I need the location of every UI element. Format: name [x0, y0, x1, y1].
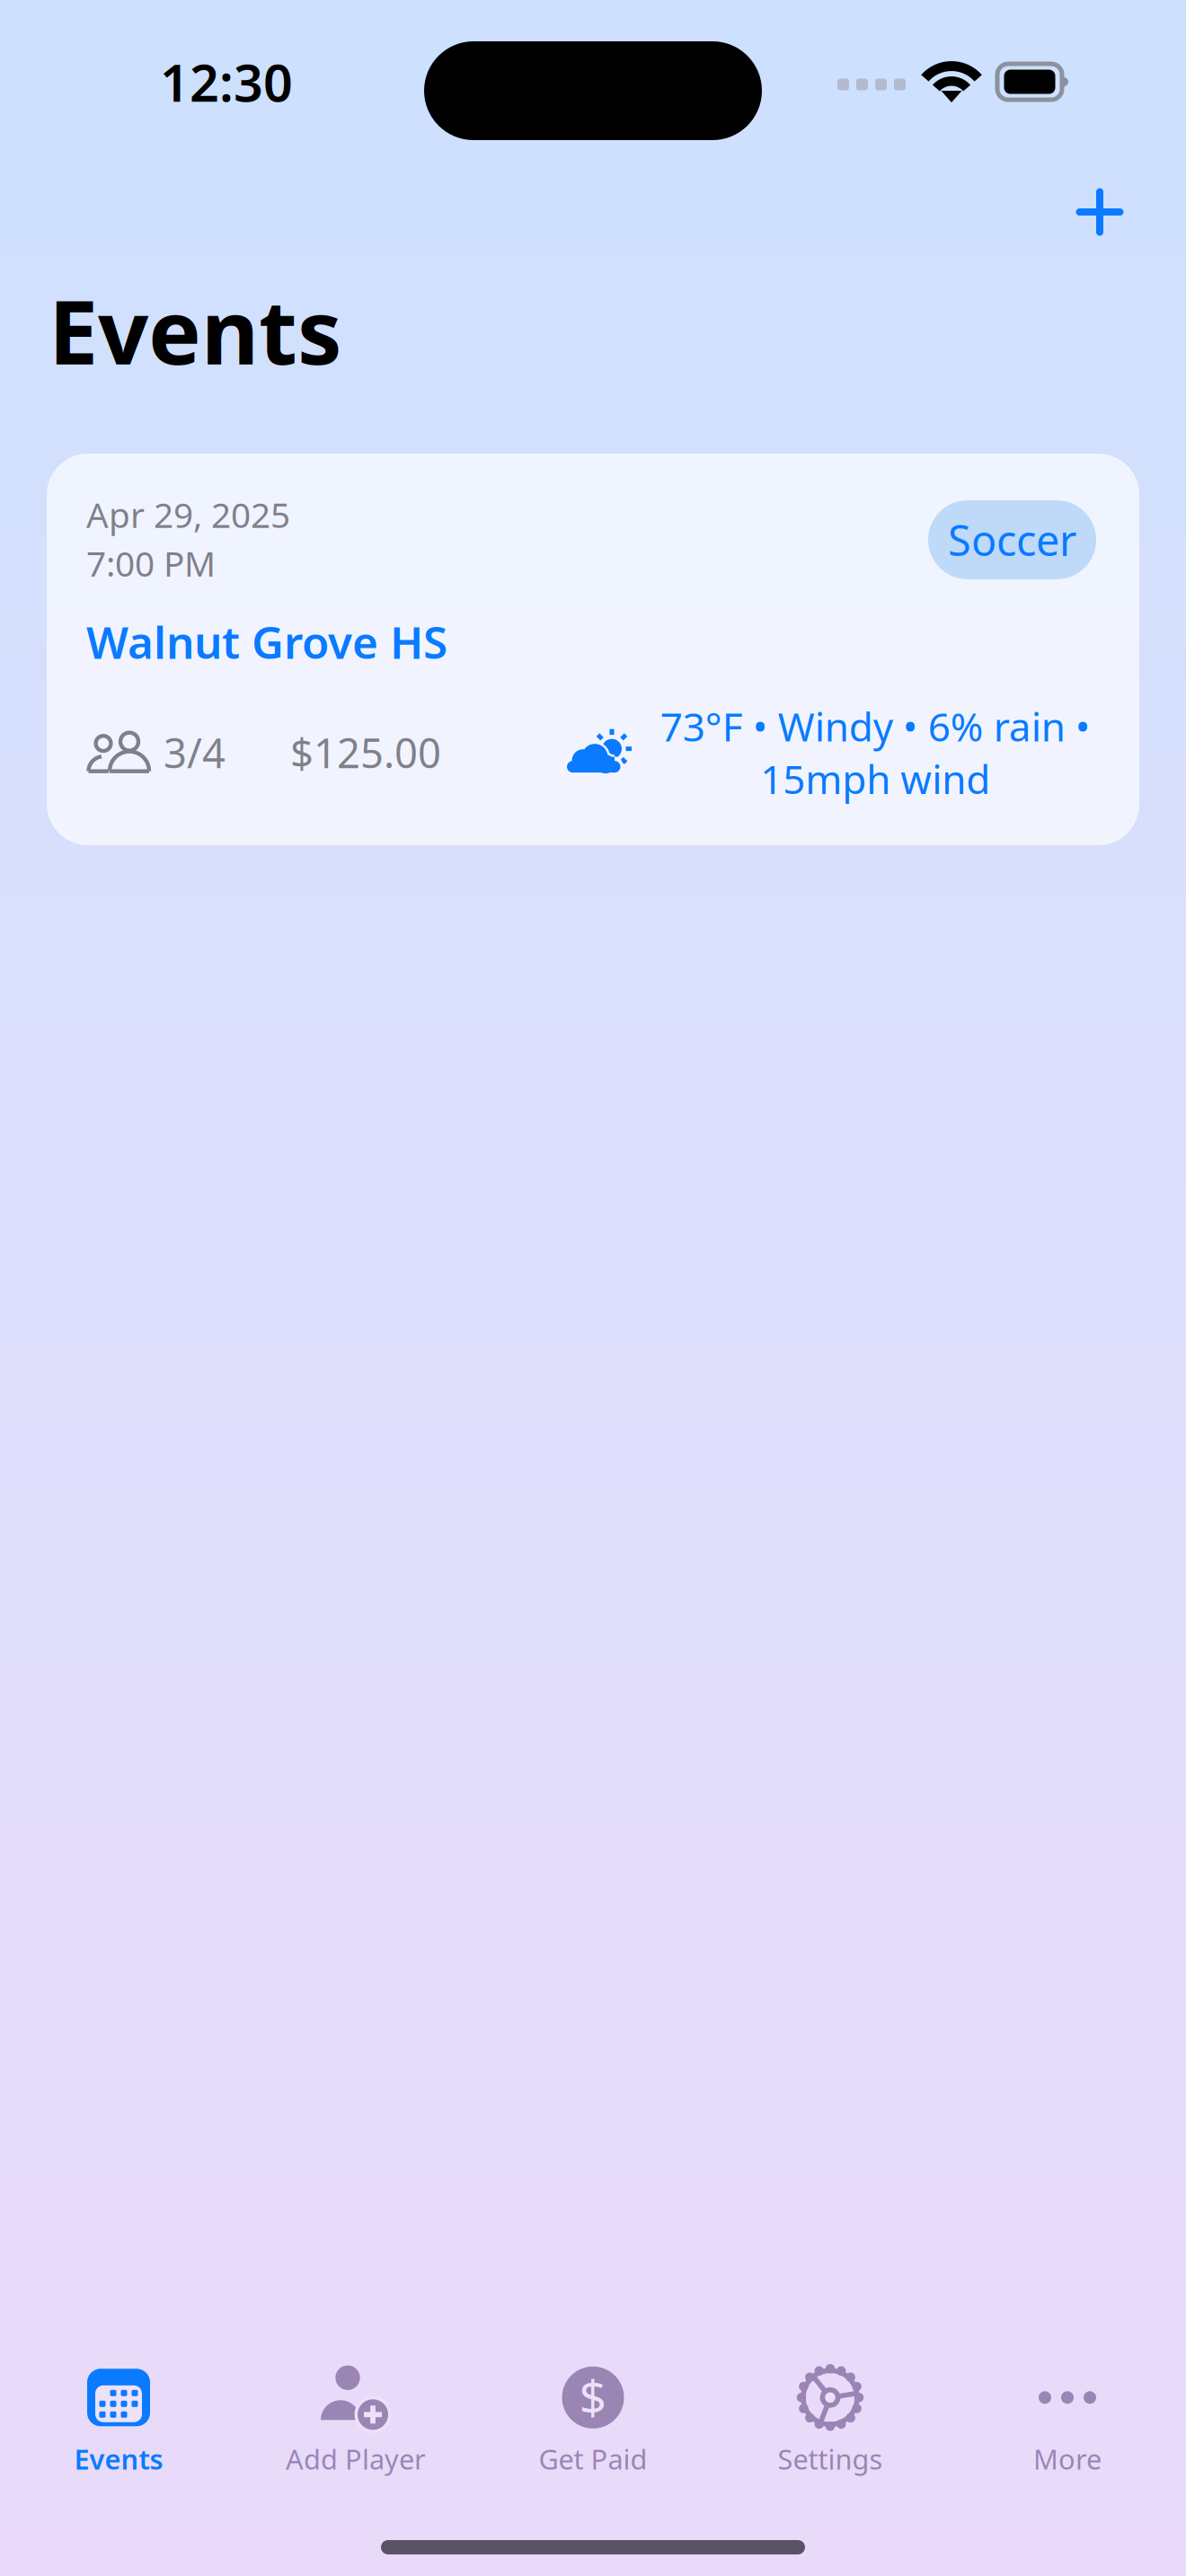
staticText: Add Player	[286, 2441, 426, 2477]
button[interactable]: Add event	[1057, 174, 1143, 250]
button[interactable]: Events	[0, 2365, 237, 2477]
staticText: $125.00	[290, 725, 441, 779]
staticText: Walnut Grove HS	[86, 612, 447, 671]
staticText: 73°F • Windy • 6% rain • 15mph wind	[660, 700, 1090, 805]
staticText: Events	[74, 2441, 163, 2477]
button[interactable]: $	[474, 2365, 712, 2477]
staticText: Soccer	[948, 512, 1076, 568]
staticText: Get Paid	[539, 2441, 647, 2477]
button[interactable]: Apr 29, 2025	[47, 454, 1139, 845]
staticText: $	[579, 2365, 607, 2428]
button[interactable]: More	[949, 2365, 1186, 2477]
staticText: 12:30	[160, 48, 293, 116]
button[interactable]: Settings	[712, 2365, 949, 2477]
staticText: More	[1033, 2441, 1102, 2477]
staticText: Events	[49, 271, 342, 389]
staticText: Settings	[778, 2441, 883, 2477]
staticText: 7:00 PM	[86, 540, 216, 586]
button[interactable]: Add Player	[237, 2365, 474, 2477]
staticText: Apr 29, 2025	[86, 491, 290, 537]
staticText: 3/4	[164, 725, 226, 779]
